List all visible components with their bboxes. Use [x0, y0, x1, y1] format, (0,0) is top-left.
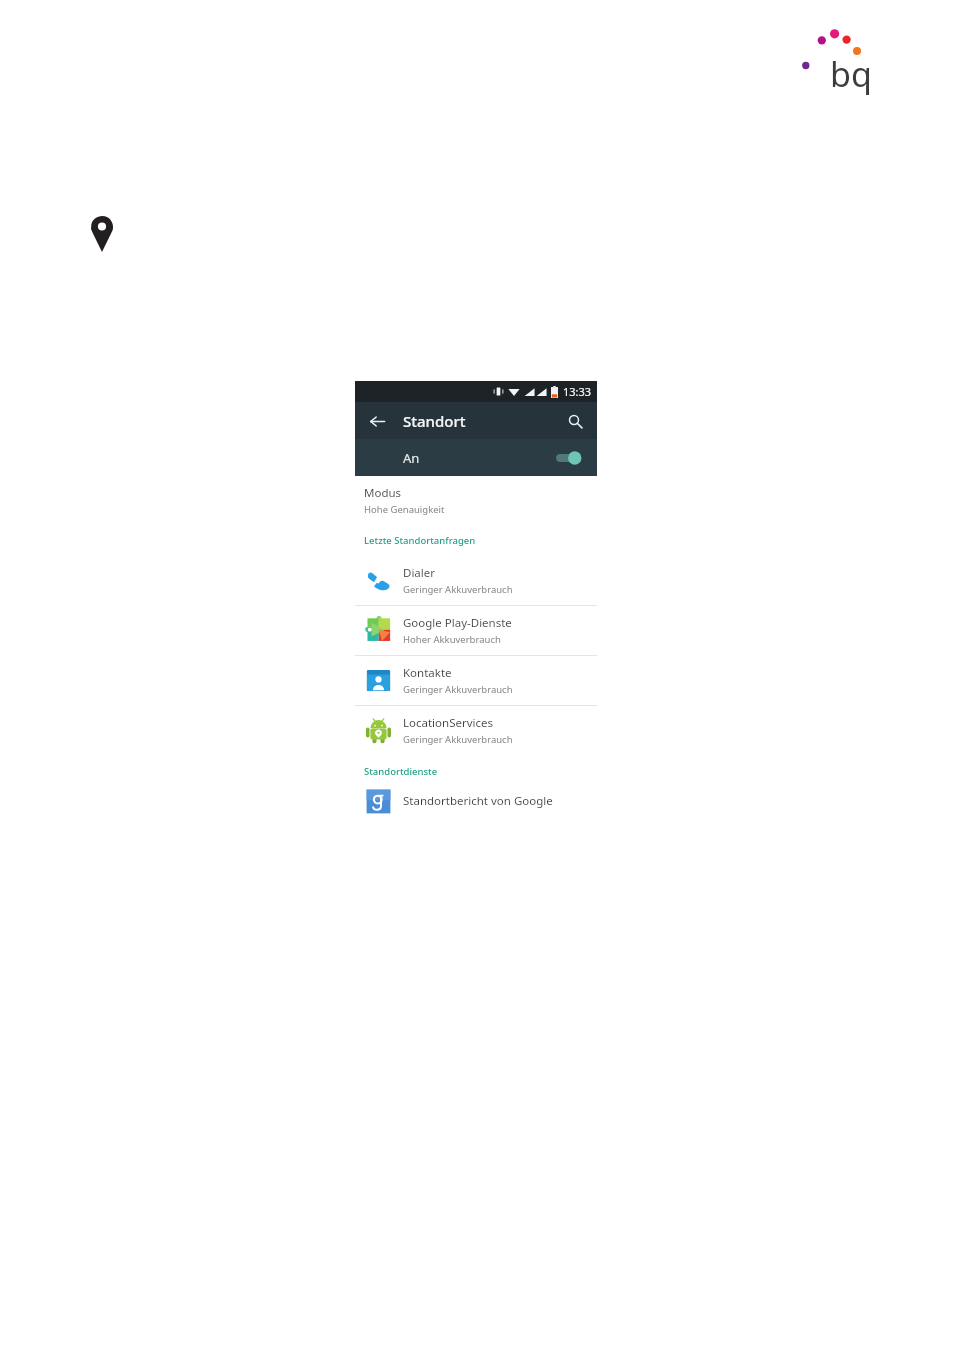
staticText: Geringer Akkuverbrauch	[403, 733, 513, 746]
staticText: bq	[830, 51, 872, 97]
staticText: 13:33	[563, 384, 592, 399]
button[interactable]: LocationServices	[355, 706, 597, 755]
button[interactable]: Modus	[355, 476, 597, 525]
staticText: Standortdienste	[364, 765, 438, 778]
button[interactable]: Google Play-Dienste	[355, 606, 597, 655]
button[interactable]: Back	[363, 407, 391, 435]
staticText: Google Play-Dienste	[403, 615, 512, 631]
staticText: Modus	[364, 485, 402, 501]
button[interactable]: An	[355, 439, 597, 476]
staticText: Geringer Akkuverbrauch	[403, 683, 513, 696]
staticText: An	[403, 449, 420, 467]
staticText: Standort	[403, 411, 466, 431]
staticText: Standortbericht von Google	[403, 793, 553, 809]
staticText: Letzte Standortanfragen	[364, 534, 476, 547]
button[interactable]: Dialer	[355, 556, 597, 605]
staticText: Kontakte	[403, 665, 452, 681]
staticText: Geringer Akkuverbrauch	[403, 583, 513, 596]
staticText: Hohe Genauigkeit	[364, 503, 445, 516]
button[interactable]: Search	[561, 407, 589, 435]
staticText: LocationServices	[403, 715, 494, 731]
button[interactable]: Standortbericht von Google	[355, 786, 597, 816]
button[interactable]: Kontakte	[355, 656, 597, 705]
staticText: Dialer	[403, 565, 436, 581]
staticText: Hoher Akkuverbrauch	[403, 633, 501, 646]
